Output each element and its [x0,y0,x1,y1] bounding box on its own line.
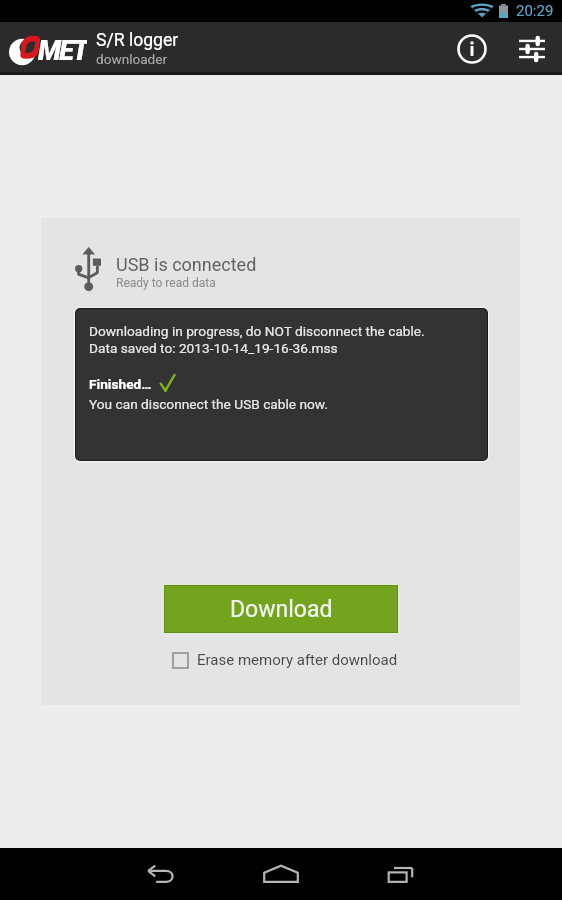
staticText: You can disconnect the USB cable now. [89,396,328,412]
staticText: Download [230,596,333,623]
staticText: downloader [96,51,168,67]
staticText: Finished… [89,376,152,392]
button[interactable]: Erase memory after download [169,647,402,673]
staticText: S/R logger [96,30,179,51]
staticText: MET [38,35,87,65]
staticText: 20:29 [516,2,554,20]
button[interactable]: Back [118,848,204,900]
button[interactable]: Home [238,848,324,900]
button[interactable]: Info [442,22,502,75]
staticText: Ready to read data [116,276,216,290]
staticText: Data saved to: 2013-10-14_19-16-36.mss [89,340,338,356]
button[interactable]: Recent apps [358,848,444,900]
staticText: Downloading in progress, do NOT disconne… [89,323,425,339]
button[interactable]: Download [165,586,397,632]
staticText: Erase memory after download [197,651,398,669]
staticText: USB is connected [116,254,257,275]
button[interactable]: Settings [502,22,562,75]
